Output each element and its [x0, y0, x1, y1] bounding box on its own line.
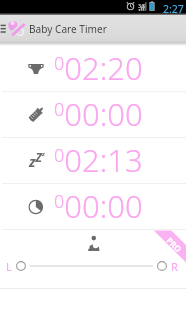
staticText: L [6, 259, 12, 274]
other: Breastfeeding [87, 236, 100, 251]
staticText: 000:00 [54, 185, 143, 227]
staticText: PRO [165, 235, 184, 254]
staticText: 000:00 [54, 93, 143, 135]
staticText: Baby Care Timer [29, 22, 107, 36]
button[interactable]: Menu [0, 15, 12, 43]
button[interactable]: Upgrade to PRO [0, 0, 186, 310]
button[interactable]: 002:20 [0, 46, 186, 92]
staticText: 002:20 [54, 47, 143, 89]
button[interactable]: 000:00 [0, 184, 186, 230]
staticText: zZz [29, 149, 45, 171]
button[interactable]: Breastfeeding [0, 230, 186, 256]
staticText: 2:27 [163, 2, 184, 16]
button[interactable]: 000:00 [0, 92, 186, 138]
button[interactable]: zZz [0, 138, 186, 184]
staticText: 3G [138, 2, 146, 9]
staticText: 002:13 [54, 139, 143, 181]
staticText: R [171, 259, 178, 274]
